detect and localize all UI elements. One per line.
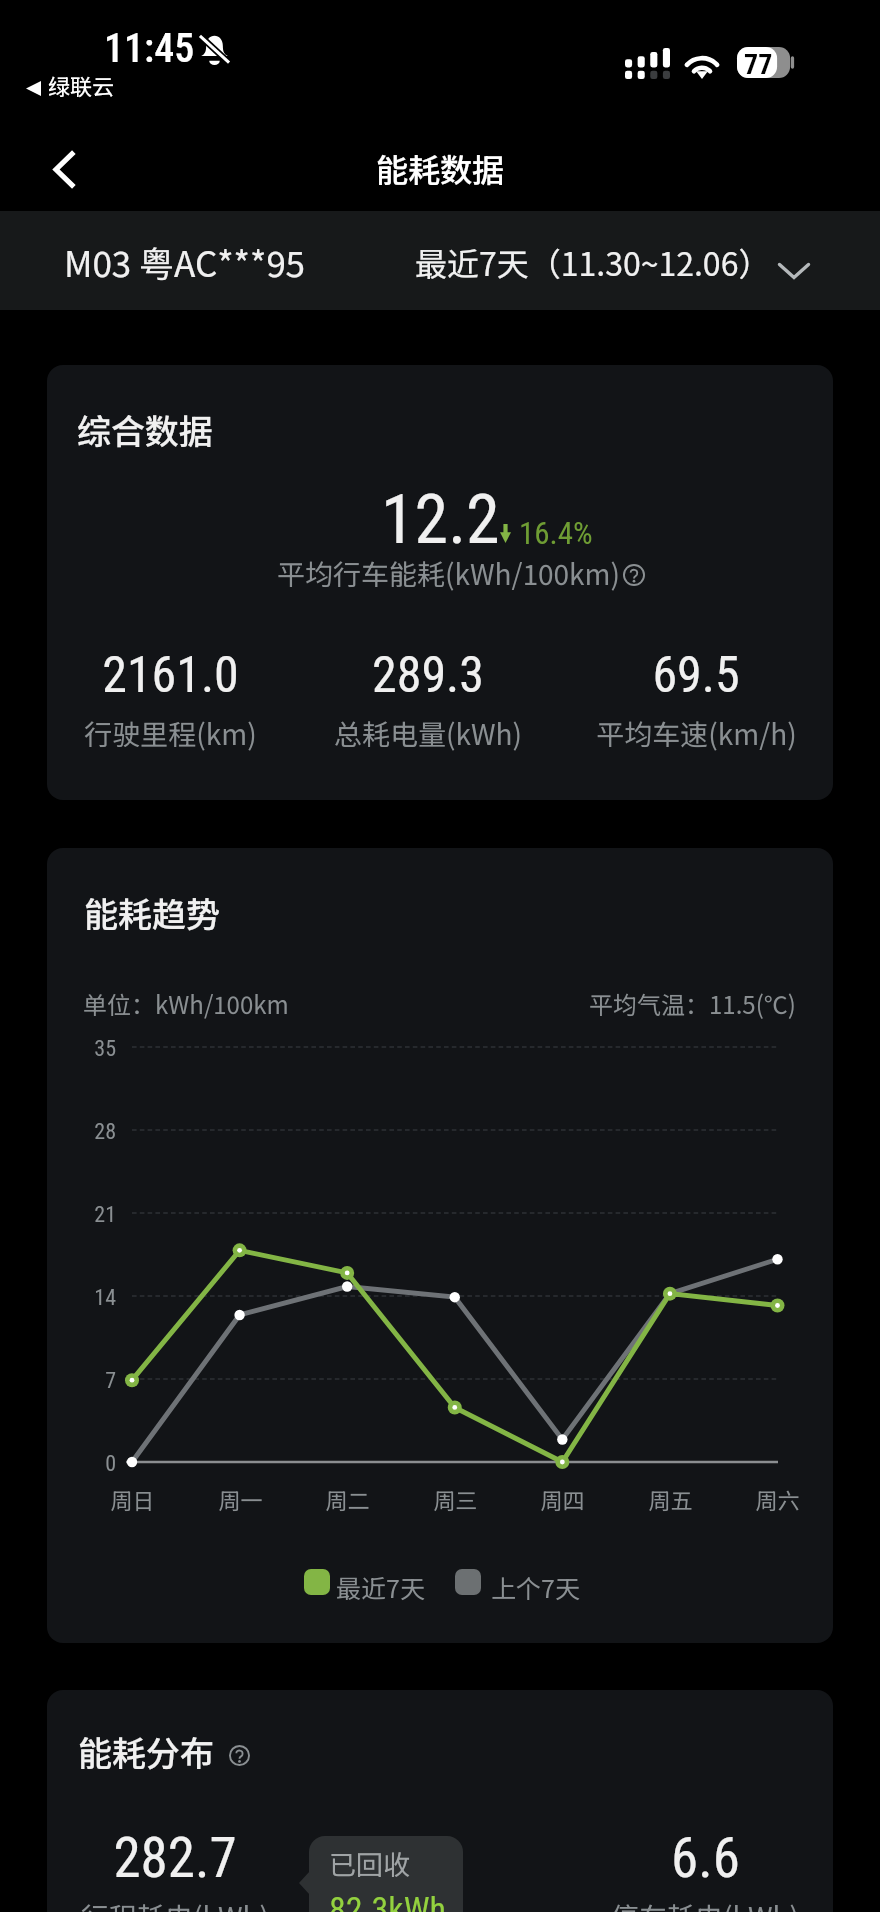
button[interactable]: Back	[24, 130, 102, 208]
staticText: 行驶里程(km)	[84, 713, 257, 754]
staticText: 单位：kWh/100km	[83, 986, 289, 1021]
button[interactable]: About energy distribution	[229, 1745, 250, 1766]
staticText: 35	[94, 1036, 116, 1062]
staticText: 综合数据	[77, 405, 213, 454]
staticText: 2161.0	[102, 646, 239, 705]
staticText: 14	[94, 1285, 116, 1311]
staticText: 能耗分布	[78, 1727, 214, 1776]
staticText: 最近7天（11.30~12.06）	[415, 239, 771, 285]
staticText: 平均气温：11.5(℃)	[589, 986, 796, 1021]
staticText: 21	[94, 1202, 116, 1228]
button[interactable]: 最近7天（11.30~12.06）	[415, 239, 771, 285]
staticText: 上个7天	[491, 1569, 580, 1605]
button[interactable]: M03 粤AC***95	[64, 236, 306, 287]
staticText: 周二	[325, 1483, 370, 1515]
staticText: 已回收	[329, 1844, 410, 1883]
staticText: 周三	[433, 1483, 478, 1515]
staticText: 6.6	[671, 1826, 740, 1890]
staticText: 总耗电量(kWh)	[334, 713, 522, 754]
staticText: 停车耗电(kWh)	[611, 1896, 799, 1912]
staticText: 周五	[648, 1483, 693, 1515]
staticText: 69.5	[652, 646, 740, 705]
button[interactable]: About average driving consumption	[623, 564, 645, 586]
staticText: 周日	[110, 1483, 155, 1515]
staticText: 周六	[755, 1483, 800, 1515]
staticText: 行程耗电(kWh)	[81, 1896, 269, 1912]
staticText: 绿联云	[48, 69, 115, 101]
staticText: 平均行车能耗(kWh/100km)	[277, 553, 620, 594]
staticText: 11:45	[104, 25, 195, 72]
staticText: 能耗数据	[376, 145, 505, 191]
staticText: 12.2	[381, 480, 500, 560]
staticText: 77	[744, 48, 773, 79]
staticText: 能耗趋势	[84, 888, 220, 937]
staticText: 282.7	[113, 1826, 237, 1890]
staticText: 289.3	[372, 646, 484, 705]
button[interactable]: Change date range	[770, 252, 818, 290]
staticText: M03 粤AC***95	[64, 236, 306, 287]
staticText: 最近7天	[336, 1569, 425, 1605]
staticText: 周一	[218, 1483, 263, 1515]
staticText: 82.3kWh	[329, 1889, 446, 1912]
staticText: 周四	[540, 1483, 585, 1515]
staticText: 28	[94, 1119, 116, 1145]
staticText: 平均车速(km/h)	[596, 713, 797, 754]
staticText: 16.4%	[519, 515, 593, 551]
staticText: 7	[105, 1368, 116, 1394]
staticText: 0	[105, 1451, 116, 1477]
